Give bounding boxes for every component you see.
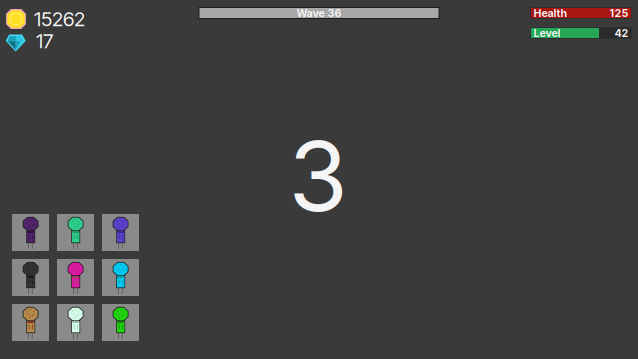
button[interactable]: Character 2	[57, 214, 94, 251]
button[interactable]: Character 1	[12, 214, 49, 251]
button[interactable]: Character 6	[102, 259, 139, 296]
staticText: Wave 36	[296, 6, 341, 19]
button[interactable]: Character 4	[12, 259, 49, 296]
staticText: Health	[533, 6, 567, 19]
button[interactable]: Character 3	[102, 214, 139, 251]
staticText: 17	[36, 29, 53, 53]
staticText: 125	[609, 6, 628, 19]
button[interactable]: Character 5	[57, 259, 94, 296]
staticText: 15262	[34, 7, 85, 31]
staticText: Level	[533, 26, 560, 39]
button[interactable]: Character 8	[57, 304, 94, 341]
staticText: 42	[614, 26, 628, 39]
staticText: 3	[288, 118, 347, 234]
button[interactable]: Character 7	[12, 304, 49, 341]
button[interactable]: Character 9	[102, 304, 139, 341]
